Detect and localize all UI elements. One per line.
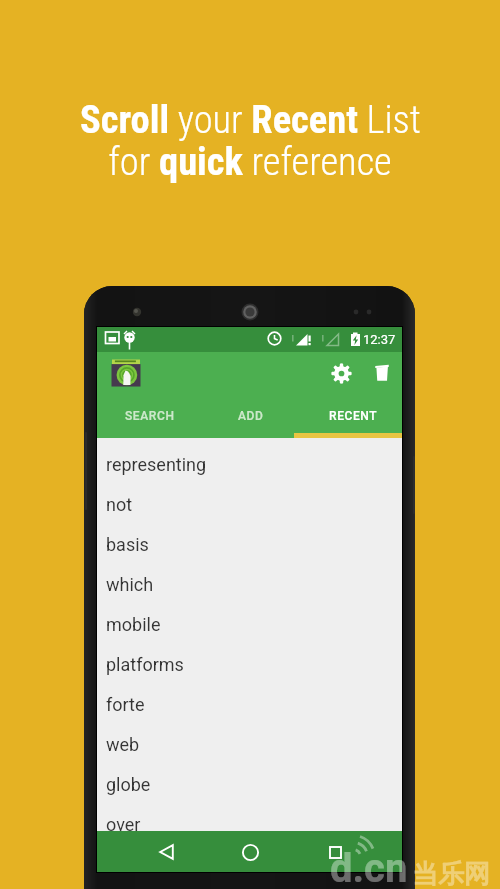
button[interactable]: globe bbox=[97, 764, 402, 804]
staticText: over bbox=[106, 814, 141, 835]
button[interactable]: representing bbox=[97, 444, 402, 484]
button[interactable]: platforms bbox=[97, 644, 402, 684]
button[interactable]: which bbox=[97, 564, 402, 604]
staticText: 当乐网 bbox=[412, 858, 490, 889]
staticText: mobile bbox=[106, 614, 161, 635]
button[interactable]: forte bbox=[97, 684, 402, 724]
button[interactable]: web bbox=[97, 724, 402, 764]
button[interactable]: SEARCH bbox=[97, 398, 198, 438]
button[interactable]: basis bbox=[97, 524, 402, 564]
staticText: 12:37 bbox=[363, 332, 396, 347]
staticText: platforms bbox=[106, 654, 184, 675]
button[interactable]: mobile bbox=[97, 604, 402, 644]
staticText: not bbox=[106, 494, 133, 515]
button[interactable]: Recent apps bbox=[315, 832, 355, 872]
button[interactable]: over bbox=[97, 804, 402, 844]
staticText: which bbox=[106, 574, 154, 595]
button[interactable]: RECENT bbox=[300, 398, 402, 438]
button[interactable]: Back bbox=[146, 832, 186, 872]
staticText: ADD bbox=[238, 409, 264, 423]
staticText: SEARCH bbox=[125, 409, 175, 423]
staticText: d.cn bbox=[330, 845, 408, 889]
staticText: globe bbox=[106, 774, 151, 795]
staticText: for quick reference bbox=[108, 139, 392, 184]
staticText: web bbox=[106, 734, 140, 755]
staticText: RECENT bbox=[329, 409, 378, 423]
button[interactable]: Delete all bbox=[364, 354, 400, 390]
button[interactable]: Home bbox=[230, 832, 270, 872]
staticText: Scroll your Recent List bbox=[80, 97, 421, 142]
staticText: forte bbox=[106, 694, 145, 715]
button[interactable]: App icon bbox=[111, 359, 141, 391]
button[interactable]: ADD bbox=[198, 398, 300, 438]
button[interactable]: not bbox=[97, 484, 402, 524]
staticText: basis bbox=[106, 534, 149, 555]
staticText: representing bbox=[106, 454, 207, 475]
button[interactable]: Settings bbox=[323, 355, 359, 391]
